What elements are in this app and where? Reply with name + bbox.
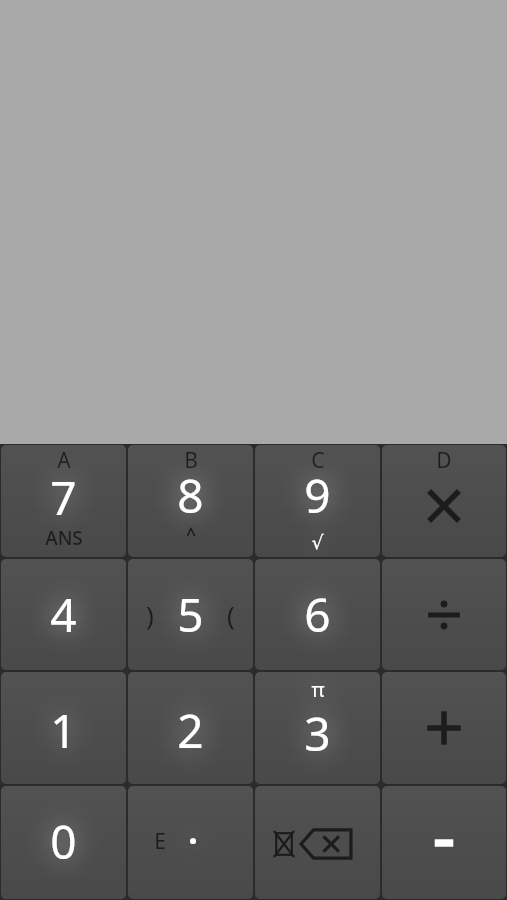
button[interactable]: 3 pi bbox=[255, 672, 380, 784]
button[interactable]: 0 bbox=[1, 786, 126, 899]
staticText: ^ bbox=[186, 523, 196, 546]
staticText: 8 bbox=[177, 464, 204, 527]
staticText: 1 bbox=[50, 699, 77, 762]
staticText: E bbox=[154, 827, 166, 856]
staticText: √ bbox=[311, 531, 324, 553]
button[interactable]: 4 bbox=[1, 559, 126, 670]
button[interactable]: Multiply, D bbox=[382, 445, 506, 557]
button[interactable]: 7 A ANS bbox=[1, 445, 126, 557]
button[interactable]: 9 C square root bbox=[255, 445, 380, 557]
button[interactable]: Plus bbox=[382, 672, 506, 784]
button[interactable]: Divide bbox=[382, 559, 506, 670]
button[interactable]: 8 B power bbox=[128, 445, 253, 557]
staticText: 0 bbox=[50, 810, 77, 873]
button[interactable]: Minus bbox=[382, 786, 506, 899]
staticText: 6 bbox=[304, 583, 331, 646]
staticText: B bbox=[184, 446, 198, 475]
button[interactable]: 6 bbox=[255, 559, 380, 670]
staticText: D bbox=[436, 446, 452, 475]
staticText: 3 bbox=[304, 702, 331, 765]
staticText: . bbox=[188, 808, 198, 854]
staticText: C bbox=[311, 446, 325, 475]
staticText: π bbox=[311, 676, 325, 703]
button[interactable]: Backspace bbox=[255, 786, 380, 899]
staticText: 2 bbox=[177, 699, 204, 762]
staticText: 7 bbox=[50, 466, 77, 529]
button[interactable]: 5 parentheses bbox=[128, 559, 253, 670]
button[interactable]: Decimal point, E bbox=[128, 786, 253, 899]
staticText: 5 bbox=[177, 583, 204, 646]
button[interactable]: 2 bbox=[128, 672, 253, 784]
button[interactable]: 1 bbox=[1, 672, 126, 784]
staticText: 9 bbox=[304, 464, 331, 527]
staticText: 4 bbox=[50, 583, 77, 646]
staticText: A bbox=[57, 446, 71, 475]
staticText: ( bbox=[227, 597, 235, 632]
staticText: ) bbox=[146, 597, 154, 632]
staticText: ANS bbox=[45, 525, 83, 551]
